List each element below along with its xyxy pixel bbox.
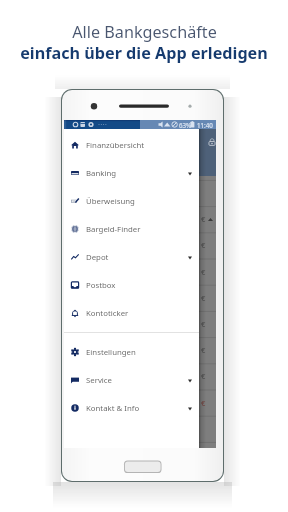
staticText: €: [201, 240, 206, 250]
staticText: Kontakt & Info: [86, 403, 140, 414]
button[interactable]: Sicher angemeldet: [199, 129, 216, 176]
button[interactable]: Finanzübersicht: [64, 131, 199, 159]
staticText: Überweisung: [86, 196, 135, 207]
button[interactable]: Überweisung: [64, 187, 199, 215]
staticText: Service: [86, 375, 113, 386]
staticText: €: [201, 371, 206, 381]
button[interactable]: Einstellungen: [64, 338, 199, 366]
staticText: 11:40: [197, 121, 213, 129]
staticText: Finanzübersicht: [86, 140, 145, 151]
staticText: €: [201, 345, 206, 355]
staticText: einfach über die App erledigen: [20, 42, 268, 64]
button[interactable]: Bargeld-Finder: [64, 215, 199, 243]
staticText: €: [201, 319, 206, 329]
button[interactable]: Service: [64, 366, 199, 394]
staticText: €: [201, 398, 206, 408]
staticText: €: [201, 214, 206, 224]
button[interactable]: Kontakt & Info: [64, 394, 199, 422]
staticText: Kontoticker: [86, 308, 129, 319]
staticText: Bargeld-Finder: [86, 224, 141, 235]
button[interactable]: Banking: [64, 159, 199, 187]
staticText: €: [201, 267, 206, 277]
staticText: €: [201, 293, 206, 303]
staticText: 63%: [179, 121, 192, 129]
button[interactable]: Kontoticker: [64, 299, 199, 327]
button[interactable]: Depot: [64, 243, 199, 271]
staticText: Depot: [86, 252, 109, 263]
button[interactable]: Postbox: [64, 271, 199, 299]
staticText: Postbox: [86, 280, 116, 291]
staticText: Einstellungen: [86, 347, 136, 358]
staticText: Banking: [86, 168, 117, 179]
staticText: Alle Bankgeschäfte: [72, 21, 217, 43]
